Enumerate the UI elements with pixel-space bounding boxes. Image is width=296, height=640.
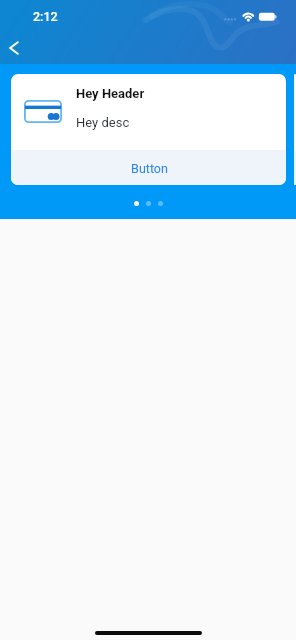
button[interactable]: Back xyxy=(1,33,27,62)
staticText: Hey desc xyxy=(76,115,130,130)
button[interactable]: Button xyxy=(11,150,286,185)
staticText: Button xyxy=(131,161,168,176)
staticText: Hey Header xyxy=(76,86,145,101)
staticText: 2:12 xyxy=(33,9,58,24)
